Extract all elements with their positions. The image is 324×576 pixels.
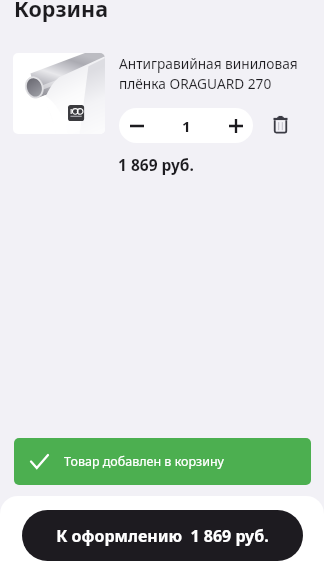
button[interactable]: Delete	[262, 107, 298, 143]
button[interactable]: Товар добавлен в корзину	[14, 438, 311, 485]
staticText: 1	[182, 116, 191, 136]
staticText: Корзина	[14, 0, 108, 23]
button[interactable]: Decrease quantity	[119, 108, 154, 143]
staticText: Антигравийная виниловая плёнка ORAGUARD …	[119, 54, 309, 93]
staticText: К оформлению 1 869 руб.	[56, 525, 269, 547]
staticText: 1 869 руб.	[118, 154, 194, 175]
staticText: Товар добавлен в корзину	[64, 453, 224, 470]
button[interactable]: Increase quantity	[218, 108, 253, 143]
button[interactable]: К оформлению 1 869 руб.	[22, 510, 303, 561]
